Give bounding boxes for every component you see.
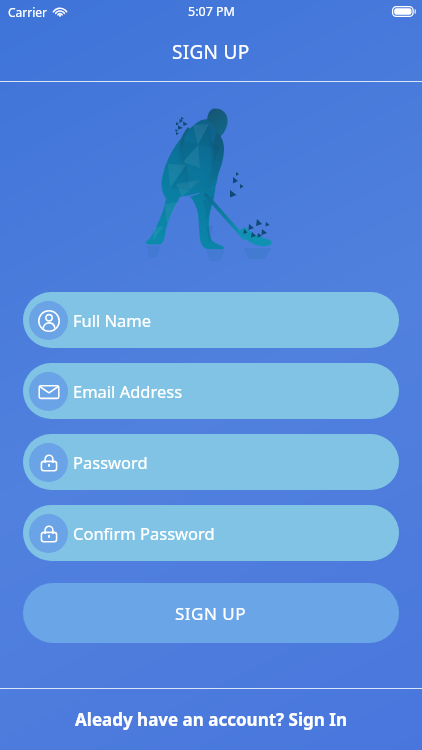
button[interactable]: Email Address [23,363,399,419]
button[interactable]: SIGN UP [23,583,399,643]
staticText: Password [73,451,148,473]
button[interactable]: Confirm Password [23,505,399,561]
staticText: Carrier [8,4,48,20]
staticText: 5:07 PM [188,3,235,20]
staticText: SIGN UP [175,602,247,625]
button[interactable]: Full Name [23,292,399,348]
staticText: SIGN UP [172,39,250,65]
button[interactable]: Aleady have an account? Sign In [0,689,422,750]
staticText: Aleady have an account? Sign In [75,708,347,731]
staticText: Email Address [73,380,183,402]
button[interactable]: Password [23,434,399,490]
staticText: Confirm Password [73,522,215,544]
staticText: Full Name [73,309,152,331]
